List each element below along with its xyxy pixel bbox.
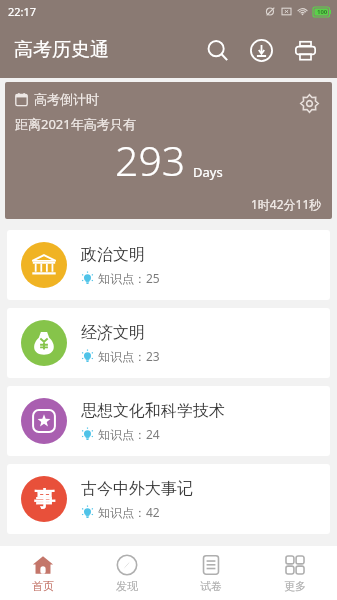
button[interactable]: 更多: [253, 546, 337, 600]
button[interactable]: Search: [195, 28, 239, 72]
staticText: 发现: [116, 579, 138, 593]
staticText: 思想文化和科学技术: [81, 401, 225, 421]
button[interactable]: Settings: [294, 88, 324, 118]
button[interactable]: 事: [7, 464, 330, 534]
button[interactable]: Print: [283, 28, 327, 72]
staticText: 经济文明: [81, 323, 145, 343]
button[interactable]: 高考倒计时: [5, 82, 332, 219]
button[interactable]: 首页: [0, 546, 85, 600]
staticText: Days: [193, 163, 223, 181]
staticText: 22:17: [8, 4, 37, 19]
button[interactable]: 政治文明: [7, 230, 330, 300]
staticText: 首页: [32, 579, 54, 593]
staticText: 政治文明: [81, 245, 145, 265]
button[interactable]: Download: [239, 28, 283, 72]
staticText: 知识点：25: [98, 270, 160, 286]
staticText: 知识点：24: [98, 426, 160, 442]
staticText: 高考倒计时: [34, 91, 99, 107]
staticText: 100: [317, 8, 328, 16]
button[interactable]: 试卷: [169, 546, 253, 600]
staticText: 293: [115, 132, 186, 188]
staticText: 更多: [284, 579, 306, 593]
staticText: 古今中外大事记: [81, 479, 193, 499]
button[interactable]: 经济文明: [7, 308, 330, 378]
button[interactable]: 思想文化和科学技术: [7, 386, 330, 456]
button[interactable]: 发现: [85, 546, 169, 600]
staticText: 距离2021年高考只有: [15, 115, 136, 133]
staticText: 试卷: [200, 579, 222, 593]
staticText: 1时42分11秒: [251, 196, 322, 212]
staticText: 知识点：23: [98, 348, 160, 364]
staticText: 知识点：42: [98, 504, 160, 520]
staticText: 事: [34, 486, 55, 512]
staticText: 高考历史通: [14, 38, 109, 62]
